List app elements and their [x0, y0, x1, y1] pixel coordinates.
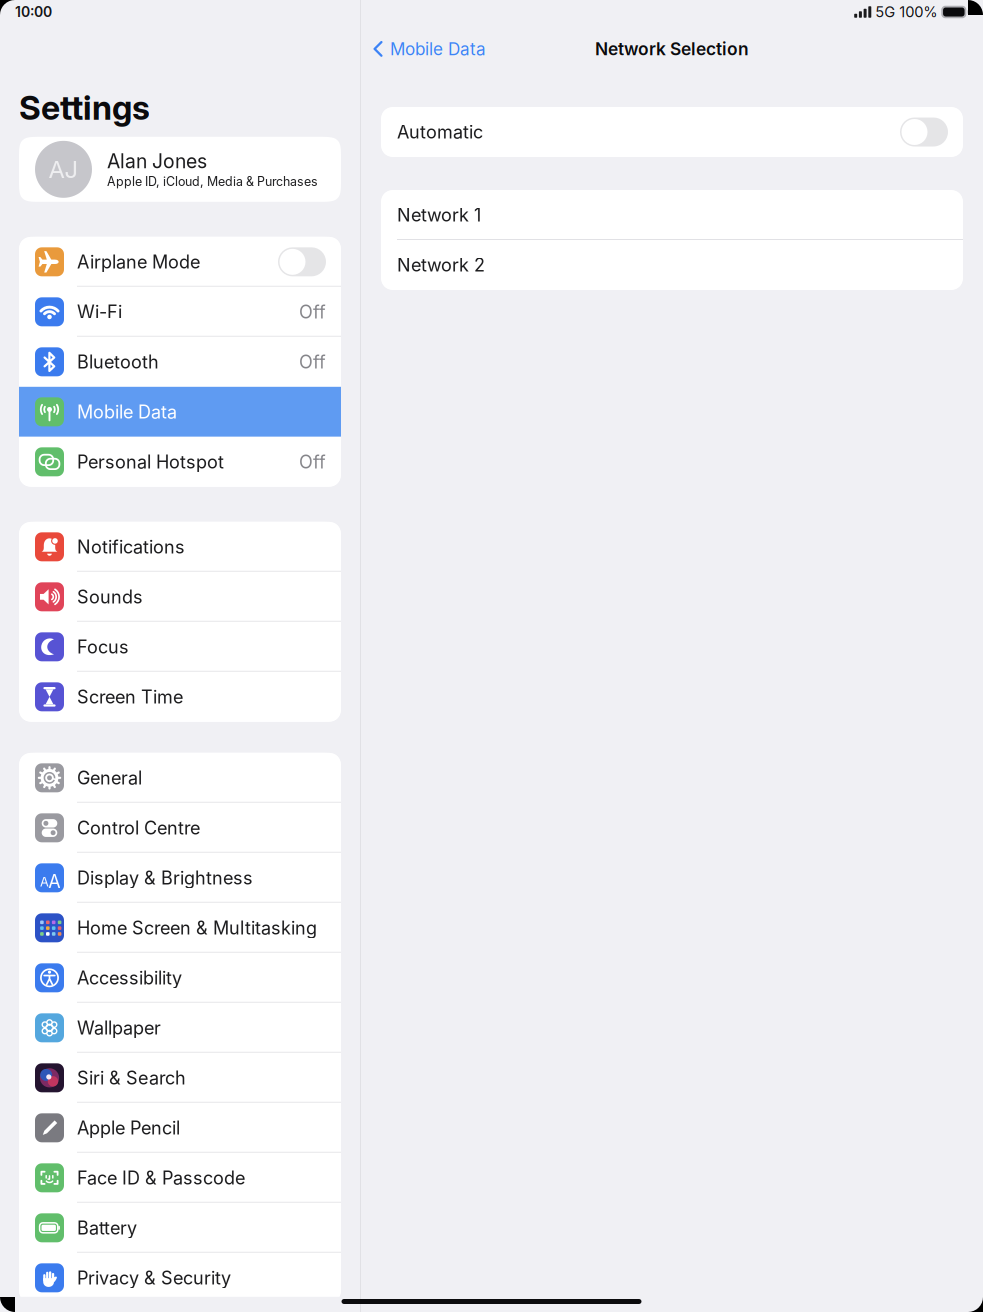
staticText: Siri & Search: [77, 1067, 186, 1089]
staticText: Mobile Data: [390, 39, 486, 59]
staticText: Apple ID, iCloud, Media & Purchases: [107, 174, 318, 189]
staticText: Control Centre: [77, 817, 200, 839]
button[interactable]: Apple Pencil: [19, 1103, 341, 1153]
button[interactable]: Network 1: [381, 190, 963, 240]
staticText: General: [77, 767, 142, 789]
staticText: Network 1: [397, 204, 481, 226]
button[interactable]: A: [19, 853, 341, 903]
staticText: 100%: [899, 3, 937, 21]
staticText: AJ: [48, 155, 78, 184]
button[interactable]: Control Centre: [19, 803, 341, 853]
button[interactable]: Personal Hotspot: [19, 437, 341, 487]
staticText: Network 2: [397, 254, 485, 276]
staticText: Personal Hotspot: [77, 451, 224, 473]
staticText: Display & Brightness: [77, 867, 253, 889]
button[interactable]: Mobile Data: [361, 32, 486, 66]
button[interactable]: Wi-Fi: [19, 287, 341, 337]
staticText: Battery: [77, 1217, 137, 1239]
staticText: Wi-Fi: [77, 301, 122, 323]
button[interactable]: Siri & Search: [19, 1053, 341, 1103]
staticText: Notifications: [77, 536, 185, 558]
button[interactable]: Accessibility: [19, 953, 341, 1003]
button[interactable]: Bluetooth: [19, 337, 341, 387]
button[interactable]: Notifications: [19, 522, 341, 572]
staticText: 10:00: [15, 3, 52, 20]
staticText: Privacy & Security: [77, 1267, 231, 1289]
button[interactable]: Screen Time: [19, 672, 341, 722]
staticText: Accessibility: [77, 967, 182, 989]
button[interactable]: Sounds: [19, 572, 341, 622]
button[interactable]: Face ID & Passcode: [19, 1153, 341, 1203]
staticText: Screen Time: [77, 686, 183, 708]
staticText: Automatic: [397, 121, 483, 143]
staticText: Mobile Data: [77, 401, 177, 423]
staticText: 5G: [875, 3, 895, 21]
button[interactable]: Wallpaper: [19, 1003, 341, 1053]
staticText: Bluetooth: [77, 351, 159, 373]
staticText: Settings: [19, 87, 150, 128]
staticText: Alan Jones: [107, 150, 207, 173]
button[interactable]: Home Screen & Multitasking: [19, 903, 341, 953]
staticText: A: [48, 871, 60, 892]
staticText: Off: [299, 301, 326, 323]
staticText: Off: [299, 451, 326, 473]
button[interactable]: Automatic: [381, 107, 963, 157]
staticText: Off: [299, 351, 326, 373]
staticText: Apple Pencil: [77, 1117, 180, 1139]
staticText: Wallpaper: [77, 1017, 161, 1039]
button[interactable]: General: [19, 753, 341, 803]
button[interactable]: AJ: [19, 137, 341, 202]
staticText: A: [40, 874, 49, 889]
staticText: Home Screen & Multitasking: [77, 917, 317, 939]
button[interactable]: Network 2: [381, 240, 963, 290]
button[interactable]: Focus: [19, 622, 341, 672]
staticText: Network Selection: [595, 38, 749, 59]
button[interactable]: Airplane Mode: [19, 237, 341, 287]
button[interactable]: Privacy & Security: [19, 1253, 341, 1303]
staticText: Airplane Mode: [77, 251, 200, 273]
staticText: Focus: [77, 636, 129, 658]
button[interactable]: Battery: [19, 1203, 341, 1253]
button[interactable]: Mobile Data: [19, 387, 341, 437]
staticText: Sounds: [77, 586, 143, 608]
staticText: Face ID & Passcode: [77, 1167, 245, 1189]
